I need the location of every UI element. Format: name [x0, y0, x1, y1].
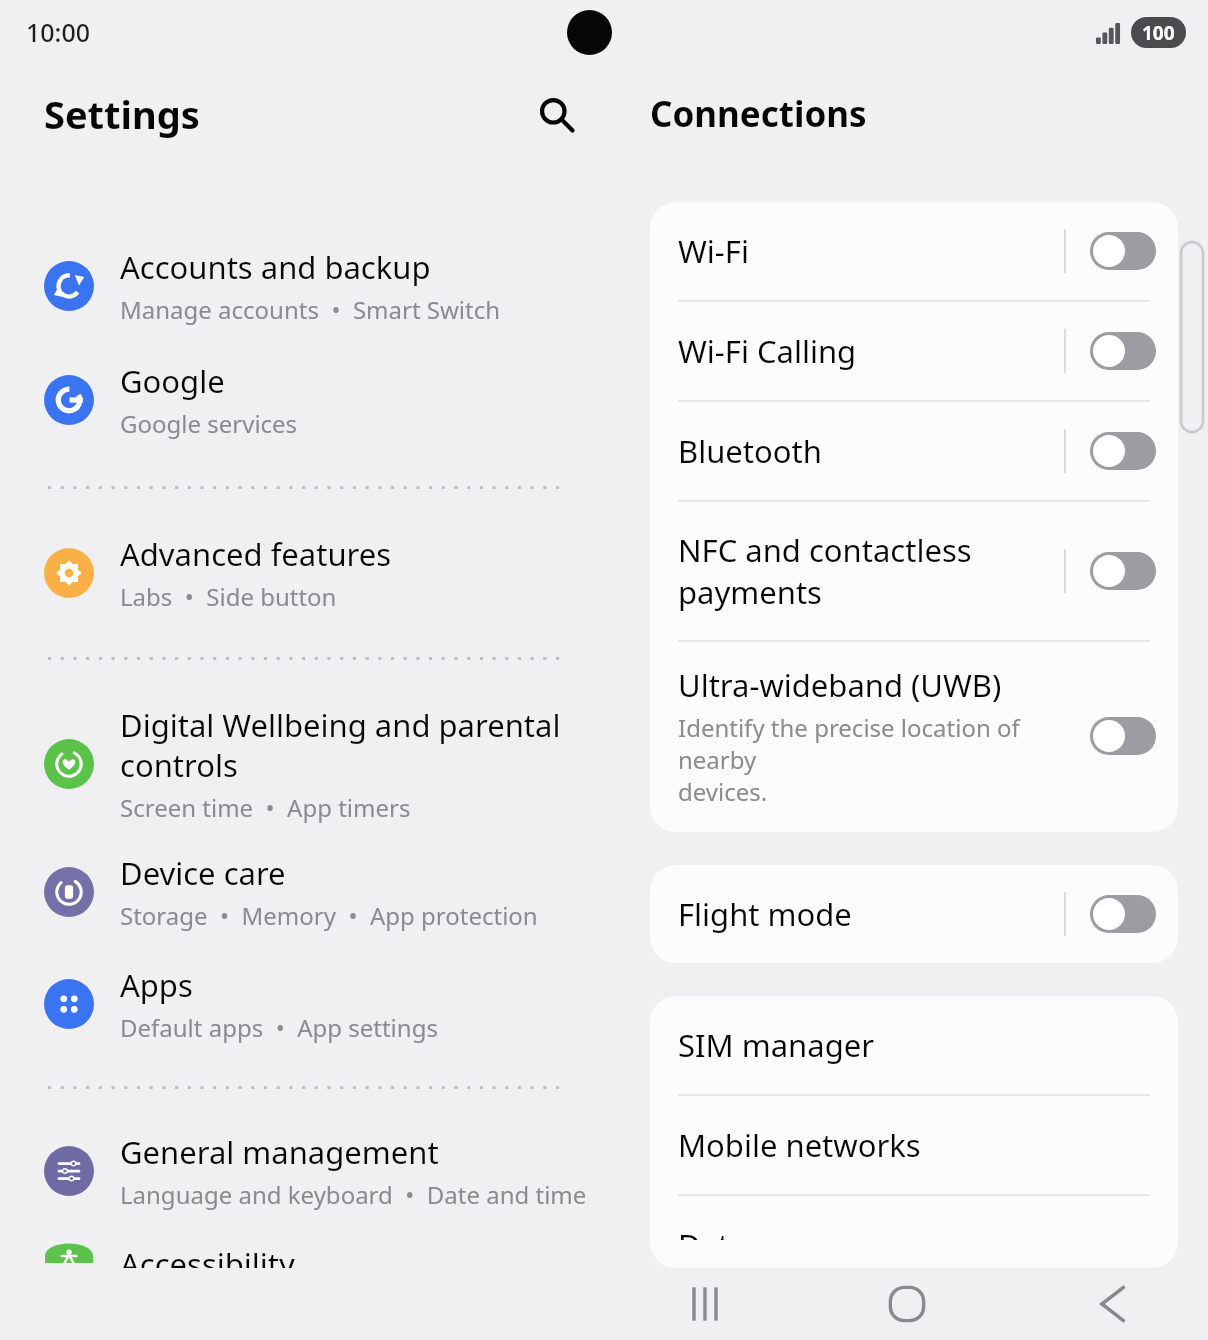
button[interactable]: Toggle [1090, 717, 1156, 755]
button[interactable]: Wi-Fi [650, 202, 1178, 300]
staticText: Digital Wellbeing and parental controls [120, 704, 561, 786]
button[interactable]: Toggle [1090, 232, 1156, 270]
staticText: General management [120, 1131, 439, 1173]
staticText: Bluetooth [678, 430, 822, 472]
staticText: Accounts and backup [120, 246, 431, 288]
button[interactable]: Digital Wellbeing and parental controls [0, 704, 620, 824]
button[interactable]: SIM manager [650, 996, 1178, 1094]
staticText: Wi-Fi [678, 230, 749, 272]
button[interactable]: Data usage [650, 1196, 1178, 1268]
staticText: Google [120, 360, 225, 402]
staticText: Advanced features [120, 533, 392, 575]
button[interactable]: Apps [0, 964, 620, 1044]
staticText: Google services [120, 407, 298, 440]
staticText: Accessibility [120, 1243, 295, 1268]
staticText: Language and keyboard • Date and time [120, 1178, 587, 1211]
button[interactable]: Search [528, 86, 584, 142]
button[interactable]: Home [806, 1268, 1007, 1340]
button[interactable]: Accessibility [0, 1243, 620, 1268]
staticText: Ultra-wideband (UWB) [678, 664, 1002, 706]
button[interactable]: Bluetooth [650, 402, 1178, 500]
staticText: Identify the precise location of nearby … [678, 711, 1064, 808]
staticText: 10:00 [26, 15, 91, 49]
staticText: Settings [44, 88, 200, 140]
staticText: NFC and contactless payments [678, 529, 1064, 613]
button[interactable]: Toggle [1090, 332, 1156, 370]
button[interactable]: Toggle [1090, 552, 1156, 590]
staticText: Screen time • App timers [120, 791, 411, 824]
staticText: 100 [1142, 20, 1175, 46]
button[interactable]: Back [1007, 1268, 1208, 1340]
button[interactable]: Accounts and backup [0, 246, 620, 326]
staticText: Storage • Memory • App protection [120, 899, 538, 932]
button[interactable]: Advanced features [0, 533, 620, 613]
staticText: Device care [120, 852, 286, 894]
staticText: Flight mode [678, 893, 852, 935]
button[interactable]: Ultra-wideband (UWB) [650, 642, 1178, 832]
staticText: Mobile networks [678, 1124, 921, 1166]
button[interactable]: Toggle [1090, 432, 1156, 470]
button[interactable]: General management [0, 1131, 620, 1211]
button[interactable]: Wi-Fi Calling [650, 302, 1178, 400]
staticText: SIM manager [678, 1024, 874, 1066]
staticText: Default apps • App settings [120, 1011, 438, 1044]
button[interactable]: Google [0, 360, 620, 440]
staticText: Labs • Side button [120, 580, 337, 613]
button[interactable]: Device care [0, 852, 620, 932]
staticText: Manage accounts • Smart Switch [120, 293, 501, 326]
staticText: Connections [650, 90, 867, 138]
staticText: Data usage [678, 1224, 843, 1240]
button[interactable]: Recents [604, 1268, 806, 1340]
staticText: Apps [120, 964, 193, 1006]
button[interactable]: Mobile networks [650, 1096, 1178, 1194]
button[interactable]: Toggle [1090, 895, 1156, 933]
button[interactable]: NFC and contactless payments [650, 502, 1178, 640]
staticText: Wi-Fi Calling [678, 330, 857, 372]
button[interactable]: Flight mode [650, 865, 1178, 963]
